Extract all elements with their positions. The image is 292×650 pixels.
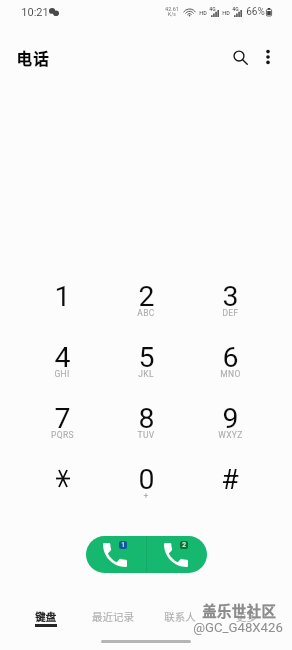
- button[interactable]: 联系人: [146, 609, 213, 637]
- staticText: +: [143, 491, 149, 501]
- staticText: @GC_G48X426: [193, 620, 283, 635]
- staticText: 2: [138, 280, 155, 313]
- staticText: 电话: [16, 47, 50, 69]
- staticText: 键盘: [35, 609, 56, 624]
- button[interactable]: More options: [252, 41, 283, 72]
- staticText: 联系人: [164, 609, 196, 624]
- staticText: 66%: [246, 6, 265, 18]
- staticText: 盖乐世社区: [202, 600, 276, 621]
- button[interactable]: 更多: [213, 609, 280, 637]
- button[interactable]: 2: [104, 280, 188, 341]
- button[interactable]: 4: [20, 341, 104, 402]
- staticText: MNO: [220, 369, 241, 379]
- staticText: 9: [222, 402, 239, 435]
- staticText: 10:21: [21, 6, 49, 19]
- staticText: HD: [199, 10, 207, 16]
- button[interactable]: 1: [20, 280, 104, 341]
- button[interactable]: 0: [104, 463, 188, 524]
- staticText: 5: [138, 341, 155, 374]
- staticText: K/s: [168, 11, 176, 17]
- staticText: 4: [54, 341, 71, 374]
- staticText: WXYZ: [218, 430, 243, 440]
- staticText: #: [221, 463, 239, 496]
- staticText: JKL: [138, 369, 154, 379]
- staticText: 4G: [232, 6, 239, 12]
- button[interactable]: 7: [20, 402, 104, 463]
- button[interactable]: 5: [104, 341, 188, 402]
- staticText: HD: [222, 10, 230, 16]
- staticText: 7: [54, 402, 71, 435]
- staticText: 1: [54, 280, 71, 313]
- staticText: 6: [222, 341, 239, 374]
- staticText: 最近记录: [92, 609, 134, 624]
- button[interactable]: #: [188, 463, 272, 524]
- staticText: 2: [182, 541, 186, 549]
- button[interactable]: Search: [224, 41, 257, 74]
- button[interactable]: 6: [188, 341, 272, 402]
- staticText: 更多: [236, 609, 257, 624]
- button[interactable]: 9: [188, 402, 272, 463]
- staticText: 8: [138, 402, 155, 435]
- staticText: TUV: [137, 430, 155, 440]
- button[interactable]: [20, 463, 104, 524]
- staticText: DEF: [222, 308, 239, 318]
- button[interactable]: 最近记录: [79, 609, 146, 637]
- button[interactable]: 3: [188, 280, 272, 341]
- button[interactable]: Call with SIM 2: [146, 536, 207, 573]
- staticText: 42.61: [165, 6, 179, 12]
- staticText: 0: [138, 463, 155, 496]
- button[interactable]: 键盘: [12, 609, 79, 637]
- staticText: 3: [222, 280, 239, 313]
- staticText: GHI: [54, 369, 70, 379]
- staticText: 1: [121, 541, 125, 549]
- button[interactable]: 8: [104, 402, 188, 463]
- staticText: ABC: [137, 308, 155, 318]
- staticText: PQRS: [51, 430, 74, 440]
- button[interactable]: Call with SIM 1: [86, 536, 146, 573]
- staticText: 4G: [209, 6, 216, 12]
